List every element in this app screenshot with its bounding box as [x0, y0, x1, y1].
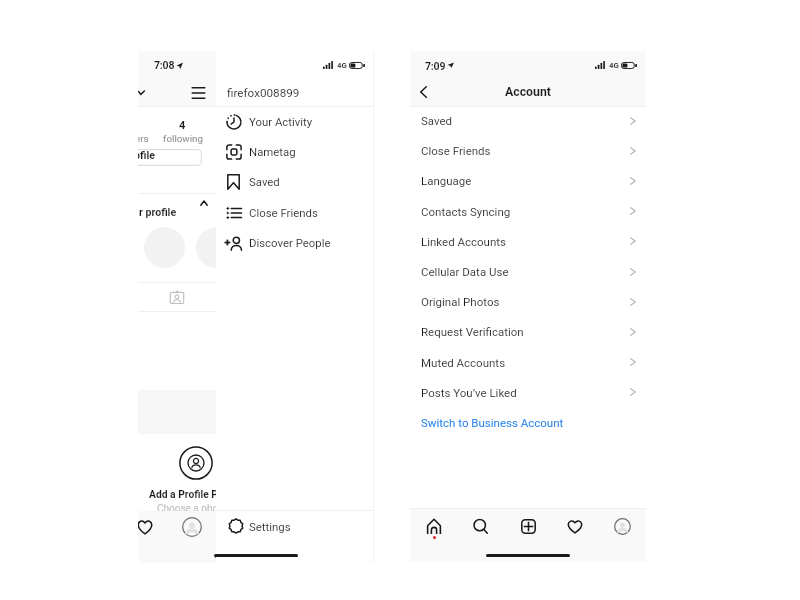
staticText: Cellular Data Use: [421, 265, 509, 278]
staticText: Close Friends: [249, 206, 318, 219]
button[interactable]: Home: [412, 509, 456, 545]
button[interactable]: [410, 136, 646, 166]
button[interactable]: [216, 198, 373, 228]
button[interactable]: [410, 106, 646, 136]
button[interactable]: Profile: [179, 514, 209, 546]
staticText: r profile: [139, 206, 177, 218]
staticText: Language: [421, 174, 472, 187]
staticText: 7:09: [425, 60, 446, 72]
staticText: Close Friends: [421, 144, 491, 157]
staticText: Discover People: [249, 236, 331, 249]
staticText: Choose a phot: [157, 503, 217, 515]
staticText: Your Activity: [249, 115, 313, 128]
button[interactable]: [138, 149, 202, 166]
staticText: ofile: [138, 149, 155, 161]
button[interactable]: [216, 511, 373, 542]
staticText: Saved: [421, 114, 453, 127]
button[interactable]: [410, 347, 646, 377]
other: Nametag: [169, 290, 185, 305]
button[interactable]: [410, 317, 646, 347]
button[interactable]: Profile: [601, 509, 645, 545]
staticText: Muted Accounts: [421, 356, 506, 369]
staticText: 4G: [337, 61, 347, 70]
other: Collapse: [200, 200, 208, 206]
button[interactable]: [410, 287, 646, 317]
button[interactable]: Add a profile photo: [179, 446, 213, 480]
staticText: Settings: [249, 520, 291, 533]
staticText: Saved: [249, 175, 280, 188]
button[interactable]: Open menu: [185, 81, 211, 107]
button[interactable]: [410, 408, 646, 438]
button[interactable]: Activity: [553, 509, 597, 545]
staticText: Account: [505, 85, 551, 99]
staticText: Original Photos: [421, 295, 500, 308]
button[interactable]: [216, 137, 373, 167]
button[interactable]: [410, 227, 646, 257]
staticText: Nametag: [249, 145, 296, 158]
staticText: 7:08: [154, 59, 175, 71]
button[interactable]: Switch account: [138, 85, 152, 105]
button[interactable]: [216, 167, 373, 197]
staticText: 4: [179, 119, 186, 132]
button[interactable]: [216, 228, 373, 258]
button[interactable]: Back: [410, 80, 444, 105]
button[interactable]: New post: [506, 509, 550, 545]
button[interactable]: [410, 378, 646, 408]
button[interactable]: [410, 166, 646, 196]
staticText: firefox008899: [227, 86, 300, 100]
staticText: 4G: [609, 61, 619, 70]
staticText: Posts You’ve Liked: [421, 386, 517, 399]
button[interactable]: Search: [460, 509, 504, 545]
staticText: ers: [138, 133, 149, 144]
staticText: Switch to Business Account: [421, 416, 564, 429]
button[interactable]: Activity: [138, 514, 162, 546]
button[interactable]: [216, 107, 373, 137]
staticText: Add a Profile P: [149, 488, 217, 500]
staticText: Request Verification: [421, 325, 524, 338]
button[interactable]: [410, 257, 646, 287]
button[interactable]: [410, 196, 646, 226]
staticText: Contacts Syncing: [421, 205, 511, 218]
staticText: Linked Accounts: [421, 235, 506, 248]
staticText: following: [163, 133, 204, 144]
